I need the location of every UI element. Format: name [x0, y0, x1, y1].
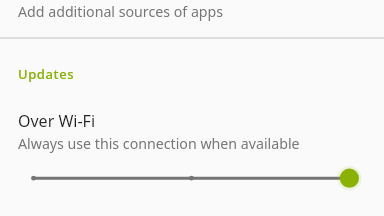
staticText: Updates: [18, 65, 75, 83]
staticText: Always use this connection when availabl…: [18, 134, 300, 153]
staticText: Over Wi-Fi: [18, 110, 96, 132]
button[interactable]: Update frequency slider: [0, 158, 384, 198]
button[interactable]: Add additional sources of apps: [0, 0, 384, 37]
button[interactable]: Over Wi-Fi: [0, 102, 384, 158]
staticText: Add additional sources of apps: [18, 2, 224, 21]
